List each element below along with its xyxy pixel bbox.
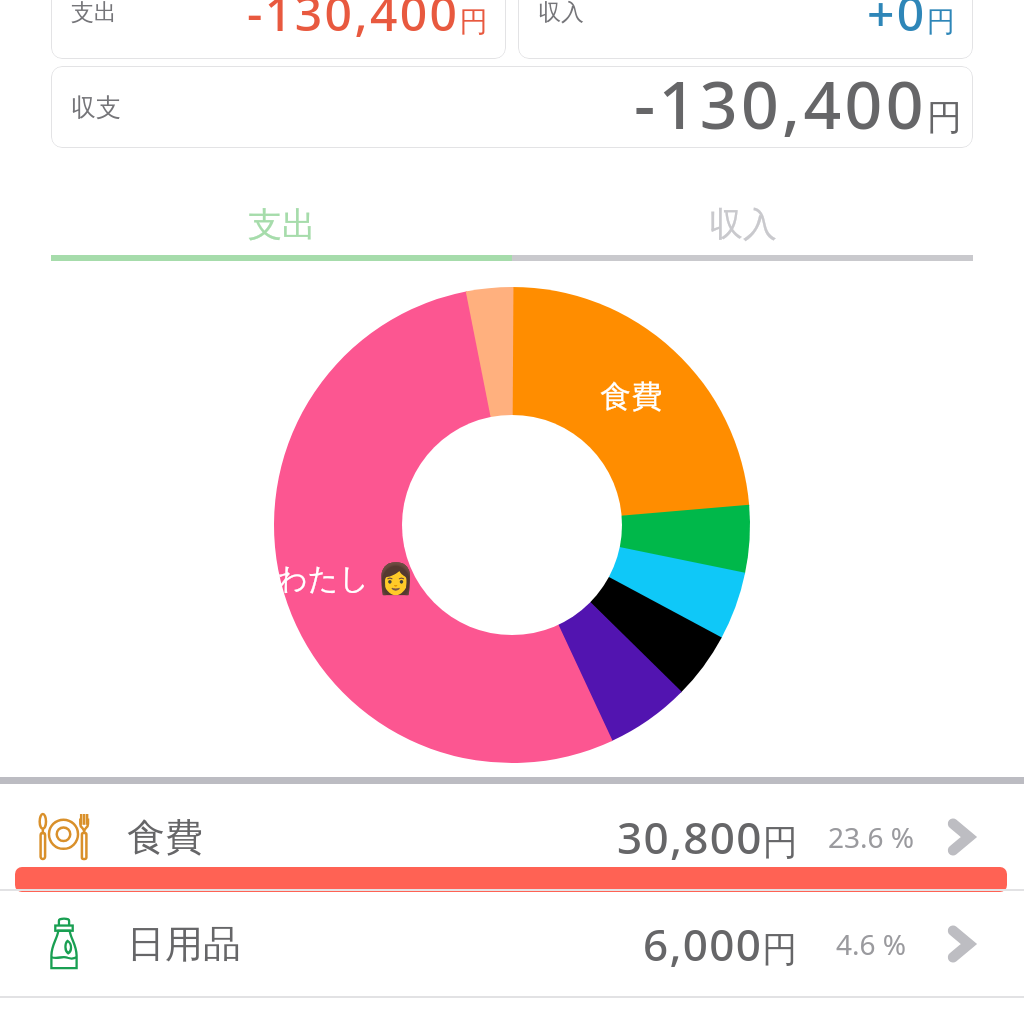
staticText: 30,800円 [617, 807, 798, 867]
button[interactable]: 食費 [0, 784, 1024, 889]
staticText: 支出 [71, 0, 117, 27]
staticText: +0円 [867, 0, 955, 45]
button[interactable]: 支出 [51, 0, 506, 59]
other: Open 日用品 [950, 927, 972, 961]
staticText: 収入 [538, 0, 584, 27]
staticText: 収支 [71, 92, 121, 123]
staticText: 支出 [248, 203, 316, 246]
button[interactable]: 収入 [512, 203, 973, 261]
staticText: -130,400円 [247, 0, 488, 45]
staticText: -130,400円 [634, 66, 962, 140]
staticText: 23.6 % [828, 818, 915, 856]
staticText: 6,000円 [643, 914, 798, 974]
staticText: 食費 [600, 377, 662, 416]
staticText: 4.6 % [836, 925, 907, 963]
button[interactable]: 支出 [51, 203, 512, 261]
button[interactable]: 収支 [51, 66, 973, 148]
button[interactable]: 収入 [518, 0, 973, 59]
staticText: 収入 [709, 203, 777, 246]
other: Open 食費 [950, 820, 972, 854]
staticText: 食費 [127, 813, 203, 861]
button[interactable]: 日用品 [0, 891, 1024, 996]
staticText: 日用品 [127, 920, 241, 968]
staticText: わたし 👩 [277, 557, 415, 598]
